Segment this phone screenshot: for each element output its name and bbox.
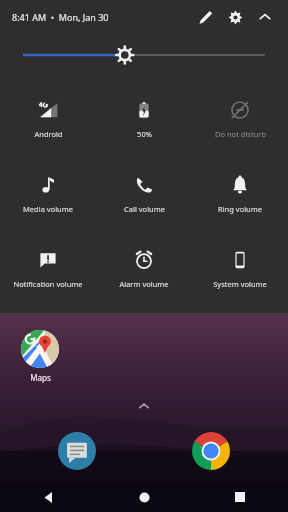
button[interactable]: Home bbox=[96, 482, 192, 512]
button[interactable]: Open app drawer bbox=[0, 398, 288, 414]
staticText: Alarm volume bbox=[119, 279, 169, 289]
button[interactable]: Edit bbox=[190, 2, 220, 32]
button[interactable]: Recents bbox=[192, 482, 288, 512]
button[interactable] bbox=[24, 34, 264, 76]
staticText: System volume bbox=[213, 279, 267, 289]
button[interactable]: Maps bbox=[12, 330, 68, 383]
button[interactable]: Messages bbox=[56, 430, 98, 472]
button[interactable]: Android bbox=[0, 82, 96, 157]
button[interactable]: Do not disturb bbox=[192, 82, 288, 157]
button[interactable]: Call volume bbox=[96, 157, 192, 232]
staticText: Do not disturb bbox=[215, 129, 266, 139]
button[interactable]: 50% bbox=[96, 82, 192, 157]
staticText: Android bbox=[34, 129, 63, 139]
button[interactable]: System volume bbox=[192, 232, 288, 307]
staticText: Media volume bbox=[23, 204, 73, 214]
button[interactable]: Ring volume bbox=[192, 157, 288, 232]
staticText: Notification volume bbox=[13, 279, 83, 289]
button[interactable]: Collapse bbox=[250, 2, 280, 32]
button[interactable]: Back bbox=[0, 482, 96, 512]
staticText: Ring volume bbox=[218, 204, 262, 214]
button[interactable]: Notification volume bbox=[0, 232, 96, 307]
staticText: 50% bbox=[137, 129, 152, 139]
button[interactable]: Media volume bbox=[0, 157, 96, 232]
staticText: Maps bbox=[30, 372, 51, 383]
button[interactable]: Alarm volume bbox=[96, 232, 192, 307]
button[interactable]: Chrome bbox=[190, 430, 232, 472]
staticText: 8:41 AM • Mon, Jan 30 bbox=[12, 11, 109, 23]
button[interactable]: Settings bbox=[220, 2, 250, 32]
staticText: Call volume bbox=[124, 204, 165, 214]
